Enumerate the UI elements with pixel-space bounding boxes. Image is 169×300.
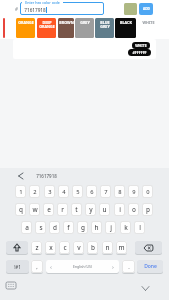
button[interactable]: 2 [29, 185, 40, 198]
staticText: 5 [76, 188, 80, 196]
staticText: h [94, 223, 99, 232]
button[interactable]: 6 [86, 185, 97, 198]
button[interactable]: v [73, 241, 84, 254]
button[interactable]: 1 [15, 185, 26, 198]
button[interactable]: s [35, 221, 46, 234]
staticText: BLUE GREY [100, 20, 110, 29]
button[interactable]: #FFFFFF [128, 49, 151, 56]
button[interactable]: d [49, 221, 60, 234]
button[interactable]: 4 [58, 185, 69, 198]
button[interactable]: ORANGE [16, 18, 35, 38]
button[interactable]: y [85, 203, 96, 216]
button[interactable]: WHITE [132, 42, 150, 49]
button[interactable]: h [91, 221, 102, 234]
button[interactable] [13, 39, 156, 59]
button[interactable]: r [57, 203, 68, 216]
staticText: ADD [143, 7, 150, 11]
staticText: 4 [62, 188, 66, 196]
button[interactable]: 9 [128, 185, 139, 198]
button[interactable]: 0 [142, 185, 153, 198]
button[interactable]: BROWN [58, 18, 74, 38]
staticText: BROWN [59, 20, 74, 25]
button[interactable] [6, 241, 28, 254]
button[interactable]: 3 [44, 185, 55, 198]
button[interactable] [135, 241, 162, 254]
button[interactable]: BLUE GREY [95, 18, 114, 38]
staticText: › [112, 264, 114, 270]
staticText: p [146, 205, 150, 214]
button[interactable]: m [116, 241, 127, 254]
staticText: 8 [118, 188, 122, 196]
button[interactable] [142, 286, 149, 291]
button[interactable]: u [99, 203, 110, 216]
button[interactable]: , [31, 260, 43, 273]
button[interactable]: n [102, 241, 113, 254]
button[interactable]: l [134, 221, 145, 234]
staticText: 1 [19, 188, 23, 196]
button[interactable]: Done [137, 260, 163, 273]
button[interactable]: !#1 [6, 260, 29, 273]
button[interactable]: e [43, 203, 54, 216]
staticText: q [19, 205, 23, 214]
staticText: r [61, 205, 64, 214]
button[interactable]: English (US) [46, 260, 119, 273]
staticText: c [63, 243, 67, 252]
staticText: Done [144, 263, 157, 270]
button[interactable]: 5 [72, 185, 83, 198]
staticText: s [39, 223, 43, 232]
staticText: y [89, 205, 93, 214]
button[interactable]: x [45, 241, 56, 254]
button[interactable]: q [15, 203, 26, 216]
button[interactable]: j [105, 221, 116, 234]
button[interactable]: 8 [114, 185, 125, 198]
button[interactable]: WHITE [137, 18, 159, 38]
staticText: DEEP ORANGE [39, 20, 55, 29]
button[interactable]: f [63, 221, 74, 234]
staticText: x [49, 243, 53, 252]
staticText: n [105, 243, 110, 252]
staticText: 0 [146, 188, 150, 196]
staticText: 71617918 [36, 173, 57, 179]
button[interactable]: 7 [100, 185, 111, 198]
button[interactable]: p [142, 203, 153, 216]
staticText: 7 [104, 188, 108, 196]
staticText: f [67, 223, 70, 232]
staticText: j [110, 223, 112, 232]
staticText: i [119, 205, 121, 214]
button[interactable]: . [122, 260, 135, 273]
button[interactable]: 71617918 [30, 172, 62, 180]
staticText: w [32, 205, 38, 214]
button[interactable]: t [71, 203, 82, 216]
staticText: o [132, 205, 136, 214]
staticText: 9 [132, 188, 136, 196]
button[interactable]: i [114, 203, 125, 216]
button[interactable]: DEEP ORANGE [37, 18, 56, 38]
button[interactable]: BLACK [115, 18, 136, 38]
staticText: v [77, 243, 81, 252]
button[interactable]: z [31, 241, 42, 254]
button[interactable] [6, 282, 16, 289]
button[interactable]: w [29, 203, 40, 216]
button[interactable]: GREY [75, 18, 94, 38]
staticText: GREY [80, 20, 90, 25]
staticText: ORANGE [18, 20, 34, 25]
staticText: Enter hex color code [25, 0, 60, 5]
button[interactable]: g [77, 221, 88, 234]
button[interactable]: ADD [139, 3, 153, 15]
staticText: BLACK [120, 20, 132, 25]
button[interactable] [20, 2, 104, 15]
button[interactable]: k [120, 221, 131, 234]
staticText: #FFFFFF [132, 50, 147, 55]
button[interactable]: a [21, 221, 32, 234]
staticText: a [25, 223, 29, 232]
button[interactable]: o [128, 203, 139, 216]
button[interactable]: c [59, 241, 70, 254]
staticText: 71617918 [24, 7, 46, 13]
staticText: 6 [90, 188, 94, 196]
staticText: m [118, 243, 125, 252]
staticText: 2 [33, 188, 37, 196]
staticText: k [124, 223, 128, 232]
staticText: g [81, 223, 85, 232]
button[interactable]: b [87, 241, 98, 254]
staticText: WHITE [135, 43, 147, 48]
